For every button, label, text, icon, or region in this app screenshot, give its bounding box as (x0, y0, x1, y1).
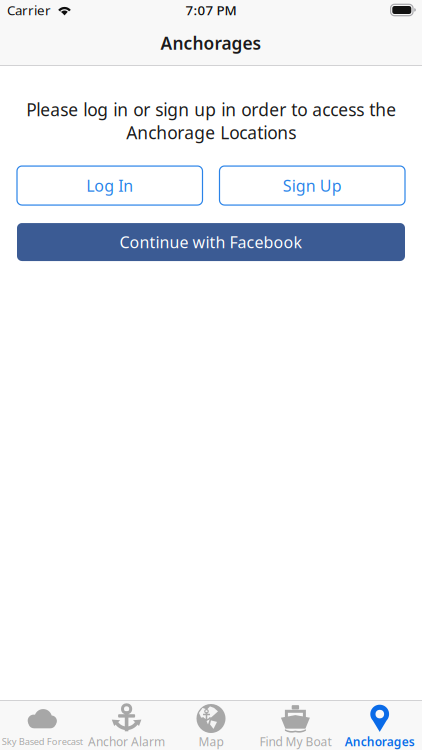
staticText: Sky Based Forecast (2, 735, 83, 748)
staticText: Continue with Facebook (119, 231, 302, 253)
button[interactable]: Continue with Facebook (17, 223, 405, 261)
button[interactable]: Map (169, 700, 253, 750)
button[interactable]: Log In (17, 166, 202, 205)
button[interactable]: Anchorages (338, 700, 422, 750)
staticText: Map (198, 733, 223, 749)
button[interactable]: Anchor Alarm (84, 700, 169, 750)
staticText: Anchor Alarm (88, 733, 165, 749)
staticText: Carrier (7, 1, 51, 19)
staticText: Log In (86, 175, 133, 196)
staticText: Find My Boat (259, 733, 331, 749)
button[interactable]: Sky Based Forecast (0, 700, 84, 750)
staticText: 7:07 PM (185, 1, 236, 19)
staticText: Sign Up (283, 175, 342, 196)
staticText: Anchorages (345, 733, 415, 749)
button[interactable]: Find My Boat (253, 700, 338, 750)
button[interactable]: Sign Up (219, 166, 405, 205)
staticText: Anchorages (160, 31, 261, 54)
staticText: Please log in or sign up in order to acc… (26, 98, 396, 144)
